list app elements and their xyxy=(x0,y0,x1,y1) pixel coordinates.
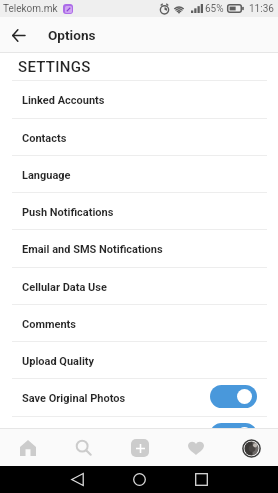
staticText: Email and SMS Notifications xyxy=(22,243,163,256)
button[interactable]: Home xyxy=(120,466,158,493)
button[interactable]: Push Notifications xyxy=(0,192,278,229)
button[interactable]: Upload Quality xyxy=(0,341,278,378)
button[interactable]: Cellular Data Use xyxy=(0,267,278,304)
staticText: Contacts xyxy=(22,132,67,145)
button[interactable]: Contacts xyxy=(0,118,278,155)
staticText: Comments xyxy=(22,318,76,331)
staticText: 65% xyxy=(205,3,224,15)
staticText: Language xyxy=(22,169,71,182)
staticText: SETTINGS xyxy=(18,58,91,76)
button[interactable]: Profile xyxy=(224,428,278,466)
staticText: 11:36 xyxy=(249,3,274,15)
button[interactable]: Save Original Photos xyxy=(0,378,278,415)
staticText: Save Original Photos xyxy=(22,392,126,405)
button[interactable]: Back xyxy=(0,17,36,53)
button[interactable]: Language xyxy=(0,155,278,192)
button[interactable]: Home xyxy=(0,428,56,466)
staticText: Push Notifications xyxy=(22,206,114,219)
button[interactable]: Search xyxy=(56,428,112,466)
button[interactable]: Back xyxy=(58,466,96,493)
button[interactable]: Save Posted Photos xyxy=(0,416,278,428)
staticText: Cellular Data Use xyxy=(22,281,107,294)
button[interactable]: Add post xyxy=(112,428,168,466)
button[interactable]: Linked Accounts xyxy=(0,80,278,117)
staticText: Telekom.mk xyxy=(3,3,58,15)
staticText: Upload Quality xyxy=(22,355,95,368)
staticText: Options xyxy=(48,27,96,43)
button[interactable]: Save Original Photos xyxy=(210,385,257,408)
button[interactable]: Email and SMS Notifications xyxy=(0,229,278,266)
button[interactable]: Save Posted Photos xyxy=(210,423,257,428)
button[interactable]: Comments xyxy=(0,304,278,341)
button[interactable]: Activity xyxy=(168,428,224,466)
staticText: Linked Accounts xyxy=(22,94,105,107)
button[interactable]: Recents xyxy=(182,466,220,493)
